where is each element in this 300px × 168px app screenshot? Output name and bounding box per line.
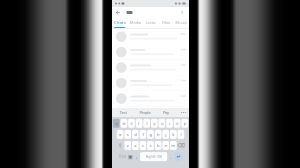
button[interactable]: k [170,130,177,139]
staticText: g [149,132,151,137]
button[interactable]: r [136,119,142,128]
staticText: h [157,132,159,137]
button[interactable]: Links [143,18,158,27]
button[interactable]: z [124,141,131,150]
button[interactable]: Test [112,108,134,117]
button[interactable] [112,91,189,106]
button[interactable]: y [151,119,158,128]
button[interactable]: a [117,130,123,139]
staticText: t [146,121,147,126]
button[interactable]: i [166,119,173,128]
staticText: Files [162,20,170,25]
staticText: Media [130,20,141,25]
staticText: , [136,153,137,160]
button[interactable]: ?123 [118,152,127,161]
staticText: o [176,121,178,126]
button[interactable]: Media [127,18,143,27]
staticText: i [169,121,170,126]
staticText: m [171,143,175,148]
staticText: r [138,121,140,126]
button[interactable]: m [170,141,177,150]
button[interactable]: c [139,141,146,150]
button[interactable]: Back [113,7,122,18]
button[interactable] [112,29,189,44]
button[interactable]: Clear search [178,7,186,18]
staticText: ▣ [128,154,133,160]
staticText: a [119,132,121,137]
staticText: j [165,132,166,137]
button[interactable]: s [124,130,131,139]
staticText: z [127,143,129,148]
button[interactable]: o [174,119,180,128]
staticText: People [139,110,150,115]
staticText: Pay [163,110,169,115]
button[interactable]: u [158,119,165,128]
button[interactable]: People [134,108,156,117]
staticText: l [180,132,181,137]
button[interactable]: g [147,130,154,139]
button[interactable] [112,60,189,75]
button[interactable]: , [134,152,139,161]
staticText: s [127,132,129,137]
button[interactable] [112,75,189,91]
button[interactable]: b [155,141,161,150]
button[interactable]: e [128,119,135,128]
button[interactable]: w [120,119,127,128]
staticText: c [142,143,144,148]
button[interactable]: ↵ [174,152,183,161]
staticText: ↵ [176,154,180,160]
staticText: ⌫ [177,142,185,149]
button[interactable]: v [147,141,154,150]
staticText: e [130,121,132,126]
staticText: p [184,121,186,126]
staticText: w [122,121,125,126]
button[interactable]: Chats [112,18,127,27]
staticText: d [134,132,136,137]
staticText: ?123 [119,155,126,158]
staticText: Music [175,20,187,25]
staticText: English (US) [146,155,162,158]
button[interactable]: l [177,130,184,139]
button[interactable]: n [162,141,169,150]
button[interactable]: p [181,119,188,128]
staticText: Chats [114,20,126,25]
button[interactable]: f [139,130,146,139]
staticText: b [157,143,159,148]
button[interactable]: j [162,130,169,139]
button[interactable]: More suggestions [180,108,187,117]
staticText: f [142,132,143,137]
button[interactable]: ▣ [128,152,133,161]
staticText: u [161,121,163,126]
button[interactable]: English (US) [140,152,167,161]
button[interactable]: t [143,119,150,128]
button[interactable]: ⌫ [177,141,185,150]
staticText: . [170,153,171,160]
button[interactable] [112,44,189,60]
staticText: k [172,132,174,137]
button[interactable]: ⇧ [116,141,123,150]
staticText: q [115,121,117,126]
button[interactable]: Music [174,18,189,27]
button[interactable]: h [155,130,161,139]
staticText: v [149,143,151,148]
staticText: Test [119,110,126,115]
button[interactable]: Files [158,18,174,27]
button[interactable]: x [132,141,139,150]
staticText: Links [145,20,155,25]
staticText: n [165,143,167,148]
button[interactable]: Pay [156,108,176,117]
staticText: ⇧ [118,142,122,149]
button[interactable]: . [168,152,173,161]
staticText: y [153,121,155,126]
staticText: x [134,143,136,148]
button[interactable]: d [132,130,139,139]
button[interactable]: q [113,119,120,128]
